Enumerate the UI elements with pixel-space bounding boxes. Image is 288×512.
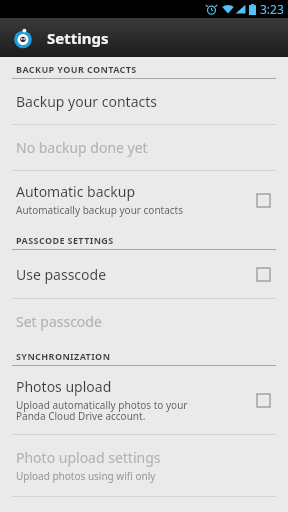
button[interactable]: Toggle checkbox	[250, 261, 276, 287]
staticText: Photos upload	[16, 377, 112, 396]
button[interactable]: Use passcode	[0, 250, 288, 298]
button[interactable]: No backup done yet	[0, 125, 288, 170]
staticText: Automatically backup your contacts	[16, 203, 183, 217]
staticText: Automatic backup	[16, 182, 136, 201]
staticText: SYNCHRONIZATION	[16, 350, 111, 362]
staticText: Photo upload settings	[16, 448, 161, 467]
staticText: PASSCODE SETTINGS	[16, 234, 114, 246]
staticText: No backup done yet	[16, 138, 148, 157]
staticText: Upload automatically photos to your Pand…	[16, 398, 188, 423]
button[interactable]: Set passcode	[0, 299, 288, 344]
staticText: Upload photos using wifi only	[16, 469, 156, 483]
staticText: Set passcode	[16, 312, 102, 331]
button[interactable]: Photos upload	[0, 366, 288, 434]
staticText: BACKUP YOUR CONTACTS	[16, 63, 137, 75]
other: App logo	[12, 27, 34, 49]
staticText: Use passcode	[16, 265, 107, 284]
button[interactable]: Toggle checkbox	[250, 187, 276, 213]
button[interactable]: Toggle checkbox	[250, 387, 276, 413]
button[interactable]: Photo upload settings	[0, 435, 288, 496]
staticText: 3:23	[260, 1, 284, 17]
staticText: Settings	[47, 28, 109, 48]
staticText: Backup your contacts	[16, 92, 157, 111]
button[interactable]: Backup your contacts	[0, 79, 288, 124]
button[interactable]: Automatic backup	[0, 171, 288, 228]
